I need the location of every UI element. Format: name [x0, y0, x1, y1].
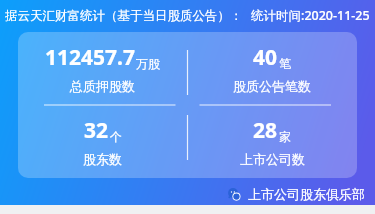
- staticText: 家: [279, 129, 291, 144]
- staticText: 万股: [136, 56, 160, 71]
- button[interactable]: 28: [187, 105, 357, 178]
- other: WeChat: [227, 187, 242, 202]
- staticText: 28: [253, 116, 278, 145]
- staticText: 上市公司股东俱乐部: [248, 186, 365, 202]
- staticText: 股质公告笔数: [233, 78, 311, 94]
- button[interactable]: 112457.7: [18, 32, 187, 105]
- staticText: 32: [84, 116, 109, 145]
- button[interactable]: WeChat: [227, 186, 365, 202]
- staticText: 统计时间:2020-11-25: [251, 7, 370, 24]
- staticText: 40: [253, 43, 278, 72]
- staticText: 总质押股数: [70, 78, 135, 94]
- staticText: 上市公司数: [240, 151, 305, 167]
- staticText: 笔: [279, 56, 291, 71]
- staticText: 股东数: [83, 151, 122, 167]
- staticText: 个: [110, 129, 122, 144]
- staticText: 据云天汇财富统计（基于当日股质公告）：: [5, 8, 243, 24]
- button[interactable]: 40: [187, 32, 357, 105]
- button[interactable]: 32: [18, 105, 187, 178]
- staticText: 112457.7: [45, 43, 135, 72]
